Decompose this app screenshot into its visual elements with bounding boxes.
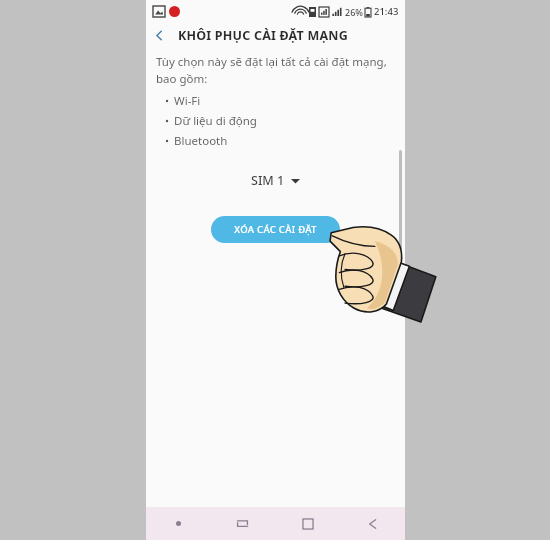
staticText: Tùy chọn này sẽ đặt lại tất cả cài đặt m… xyxy=(156,54,395,87)
staticText: Wi-Fi xyxy=(174,93,201,109)
staticText: KHÔI PHỤC CÀI ĐẶT MẠNG xyxy=(178,27,348,44)
button[interactable]: Back xyxy=(340,507,405,540)
button[interactable]: Back xyxy=(146,22,172,48)
button[interactable]: Home xyxy=(275,507,340,540)
button[interactable]: XÓA CÁC CÀI ĐẶT xyxy=(211,216,340,243)
staticText: 26% xyxy=(345,6,363,18)
button[interactable]: Recents xyxy=(210,507,275,540)
staticText: XÓA CÁC CÀI ĐẶT xyxy=(234,223,317,236)
staticText: 21:43 xyxy=(374,5,399,18)
staticText: Bluetooth xyxy=(174,133,228,149)
button[interactable]: Menu xyxy=(146,507,210,540)
staticText: Dữ liệu di động xyxy=(174,113,257,129)
staticText: SIM 1 xyxy=(251,172,285,189)
button[interactable]: SIM 1 xyxy=(245,169,306,192)
